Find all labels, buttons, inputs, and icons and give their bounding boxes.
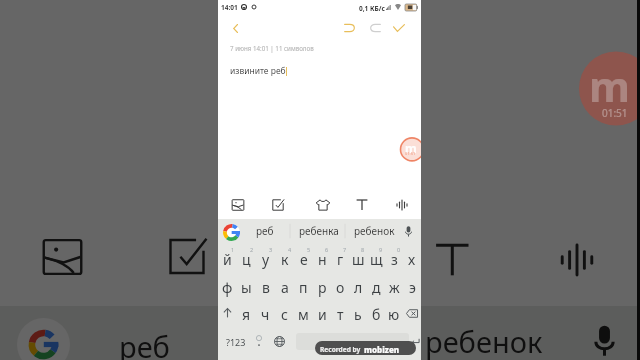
button[interactable]: о bbox=[331, 271, 349, 299]
staticText: ц bbox=[242, 250, 251, 269]
staticText: и bbox=[318, 305, 327, 324]
staticText: 1 bbox=[231, 246, 235, 253]
button[interactable]: Note theme bbox=[312, 193, 334, 217]
staticText: 0,1 КБ/с bbox=[359, 4, 385, 13]
button[interactable]: п bbox=[294, 271, 313, 299]
staticText: щ bbox=[370, 250, 383, 269]
staticText: извините реб bbox=[230, 65, 286, 77]
button[interactable]: ы bbox=[237, 271, 256, 299]
button[interactable]: в bbox=[256, 271, 275, 299]
button[interactable]: е bbox=[294, 243, 313, 271]
button[interactable]: щ bbox=[367, 243, 385, 271]
staticText: ч bbox=[261, 305, 270, 324]
staticText: 8 bbox=[361, 246, 365, 253]
button[interactable]: с bbox=[275, 299, 294, 327]
button[interactable]: и bbox=[313, 299, 331, 327]
staticText: 5 bbox=[307, 246, 311, 253]
button[interactable]: Voice input bbox=[397, 219, 419, 243]
button[interactable]: ю bbox=[385, 299, 403, 327]
staticText: ш bbox=[352, 250, 365, 269]
button[interactable]: Undo bbox=[337, 16, 361, 40]
staticText: 4 bbox=[288, 246, 292, 253]
staticText: m bbox=[405, 140, 417, 156]
button[interactable]: Redo bbox=[363, 16, 387, 40]
staticText: 0 bbox=[397, 246, 401, 253]
staticText: е bbox=[300, 250, 308, 269]
button[interactable]: д bbox=[367, 271, 385, 299]
staticText: б bbox=[372, 305, 381, 324]
button[interactable]: Voice recording bbox=[391, 193, 413, 217]
button[interactable]: Space bbox=[296, 333, 409, 350]
button[interactable]: ц bbox=[237, 243, 256, 271]
staticText: д bbox=[372, 278, 381, 297]
staticText: 3 bbox=[269, 246, 273, 253]
button[interactable]: ребенок bbox=[347, 219, 401, 243]
staticText: реб bbox=[256, 224, 274, 238]
staticText: х bbox=[408, 250, 416, 269]
staticText: в bbox=[262, 278, 270, 297]
staticText: м bbox=[298, 305, 309, 324]
button[interactable]: Backspace bbox=[403, 299, 421, 327]
button[interactable]: Change language bbox=[269, 327, 289, 355]
button[interactable]: Insert image bbox=[227, 193, 249, 217]
button[interactable]: реб bbox=[238, 219, 292, 243]
button[interactable]: Checklist bbox=[267, 193, 289, 217]
button[interactable]: т bbox=[331, 299, 349, 327]
button[interactable]: з bbox=[385, 243, 403, 271]
staticText: з bbox=[391, 250, 398, 269]
staticText: й bbox=[223, 250, 232, 269]
staticText: 01:51 bbox=[602, 106, 628, 120]
staticText: р bbox=[318, 278, 327, 297]
button[interactable]: м bbox=[294, 299, 313, 327]
button[interactable]: ь bbox=[349, 299, 367, 327]
staticText: ю bbox=[388, 305, 400, 324]
staticText: 01:51 bbox=[405, 151, 416, 156]
staticText: 2 bbox=[250, 246, 254, 253]
button[interactable]: у bbox=[256, 243, 275, 271]
button[interactable]: л bbox=[349, 271, 367, 299]
button[interactable]: н bbox=[313, 243, 331, 271]
button[interactable]: ш bbox=[349, 243, 367, 271]
staticText: 6 bbox=[325, 246, 329, 253]
staticText: ж bbox=[389, 278, 400, 297]
staticText: о bbox=[336, 278, 345, 297]
staticText: я bbox=[242, 305, 251, 324]
staticText: с bbox=[281, 305, 288, 324]
staticText: э bbox=[409, 278, 416, 297]
staticText: у bbox=[262, 250, 270, 269]
button[interactable]: Text style bbox=[351, 193, 373, 217]
button[interactable]: я bbox=[237, 299, 256, 327]
button[interactable]: Back bbox=[223, 16, 247, 40]
staticText: 9 bbox=[379, 246, 383, 253]
staticText: к bbox=[281, 250, 289, 269]
staticText: Recorded by bbox=[320, 345, 361, 354]
button[interactable]: Shift bbox=[218, 299, 237, 327]
staticText: н bbox=[318, 250, 327, 269]
button[interactable]: г bbox=[331, 243, 349, 271]
button[interactable]: й bbox=[218, 243, 237, 271]
staticText: ?123 bbox=[226, 336, 246, 348]
button[interactable]: Save bbox=[387, 16, 411, 40]
staticText: mobizen bbox=[364, 344, 400, 355]
button[interactable]: Emoji and comma bbox=[249, 327, 269, 355]
button[interactable]: ж bbox=[385, 271, 403, 299]
staticText: а bbox=[281, 278, 289, 297]
staticText: т bbox=[337, 305, 344, 324]
button[interactable]: а bbox=[275, 271, 294, 299]
staticText: ы bbox=[241, 278, 252, 297]
button[interactable]: э bbox=[403, 271, 421, 299]
button[interactable]: ч bbox=[256, 299, 275, 327]
button[interactable]: ребенка bbox=[292, 219, 346, 243]
staticText: ребенка bbox=[299, 224, 339, 238]
button[interactable]: х bbox=[403, 243, 421, 271]
button[interactable]: к bbox=[275, 243, 294, 271]
staticText: ф bbox=[222, 278, 233, 297]
button[interactable]: ?123 bbox=[221, 327, 251, 355]
button[interactable]: ф bbox=[218, 271, 237, 299]
staticText: 7 bbox=[343, 246, 347, 253]
staticText: г bbox=[337, 250, 344, 269]
button[interactable]: р bbox=[313, 271, 331, 299]
button[interactable]: Enter bbox=[409, 327, 421, 355]
button[interactable]: б bbox=[367, 299, 385, 327]
staticText: л bbox=[354, 278, 363, 297]
